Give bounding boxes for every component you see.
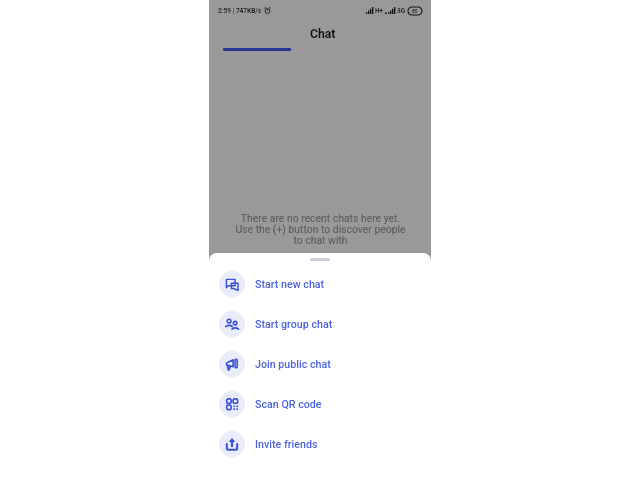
staticText: 85 xyxy=(412,8,418,14)
staticText: Start group chat xyxy=(255,318,333,331)
staticText: There are no recent chats here yet. Use … xyxy=(235,212,406,246)
other: Join public chat xyxy=(219,351,245,377)
staticText: Chat xyxy=(310,27,336,41)
staticText: Invite friends xyxy=(255,438,318,451)
button[interactable]: Start new chat xyxy=(209,264,431,304)
button[interactable]: Scan QR code xyxy=(209,384,431,424)
staticText: 2:59 | 747KB/s xyxy=(218,7,262,15)
button[interactable]: Join public chat xyxy=(209,344,431,384)
button[interactable]: Start group chat xyxy=(209,304,431,344)
other: Scan QR code xyxy=(219,391,245,417)
other: Start new chat xyxy=(219,271,245,297)
staticText: H+ xyxy=(375,7,384,15)
staticText: Join public chat xyxy=(255,358,331,371)
staticText: Scan QR code xyxy=(255,398,322,411)
other: Start group chat xyxy=(219,311,245,337)
other: Invite friends xyxy=(219,431,245,457)
staticText: Start new chat xyxy=(255,278,325,291)
button[interactable]: Invite friends xyxy=(209,424,431,464)
staticText: 3G xyxy=(397,7,406,15)
